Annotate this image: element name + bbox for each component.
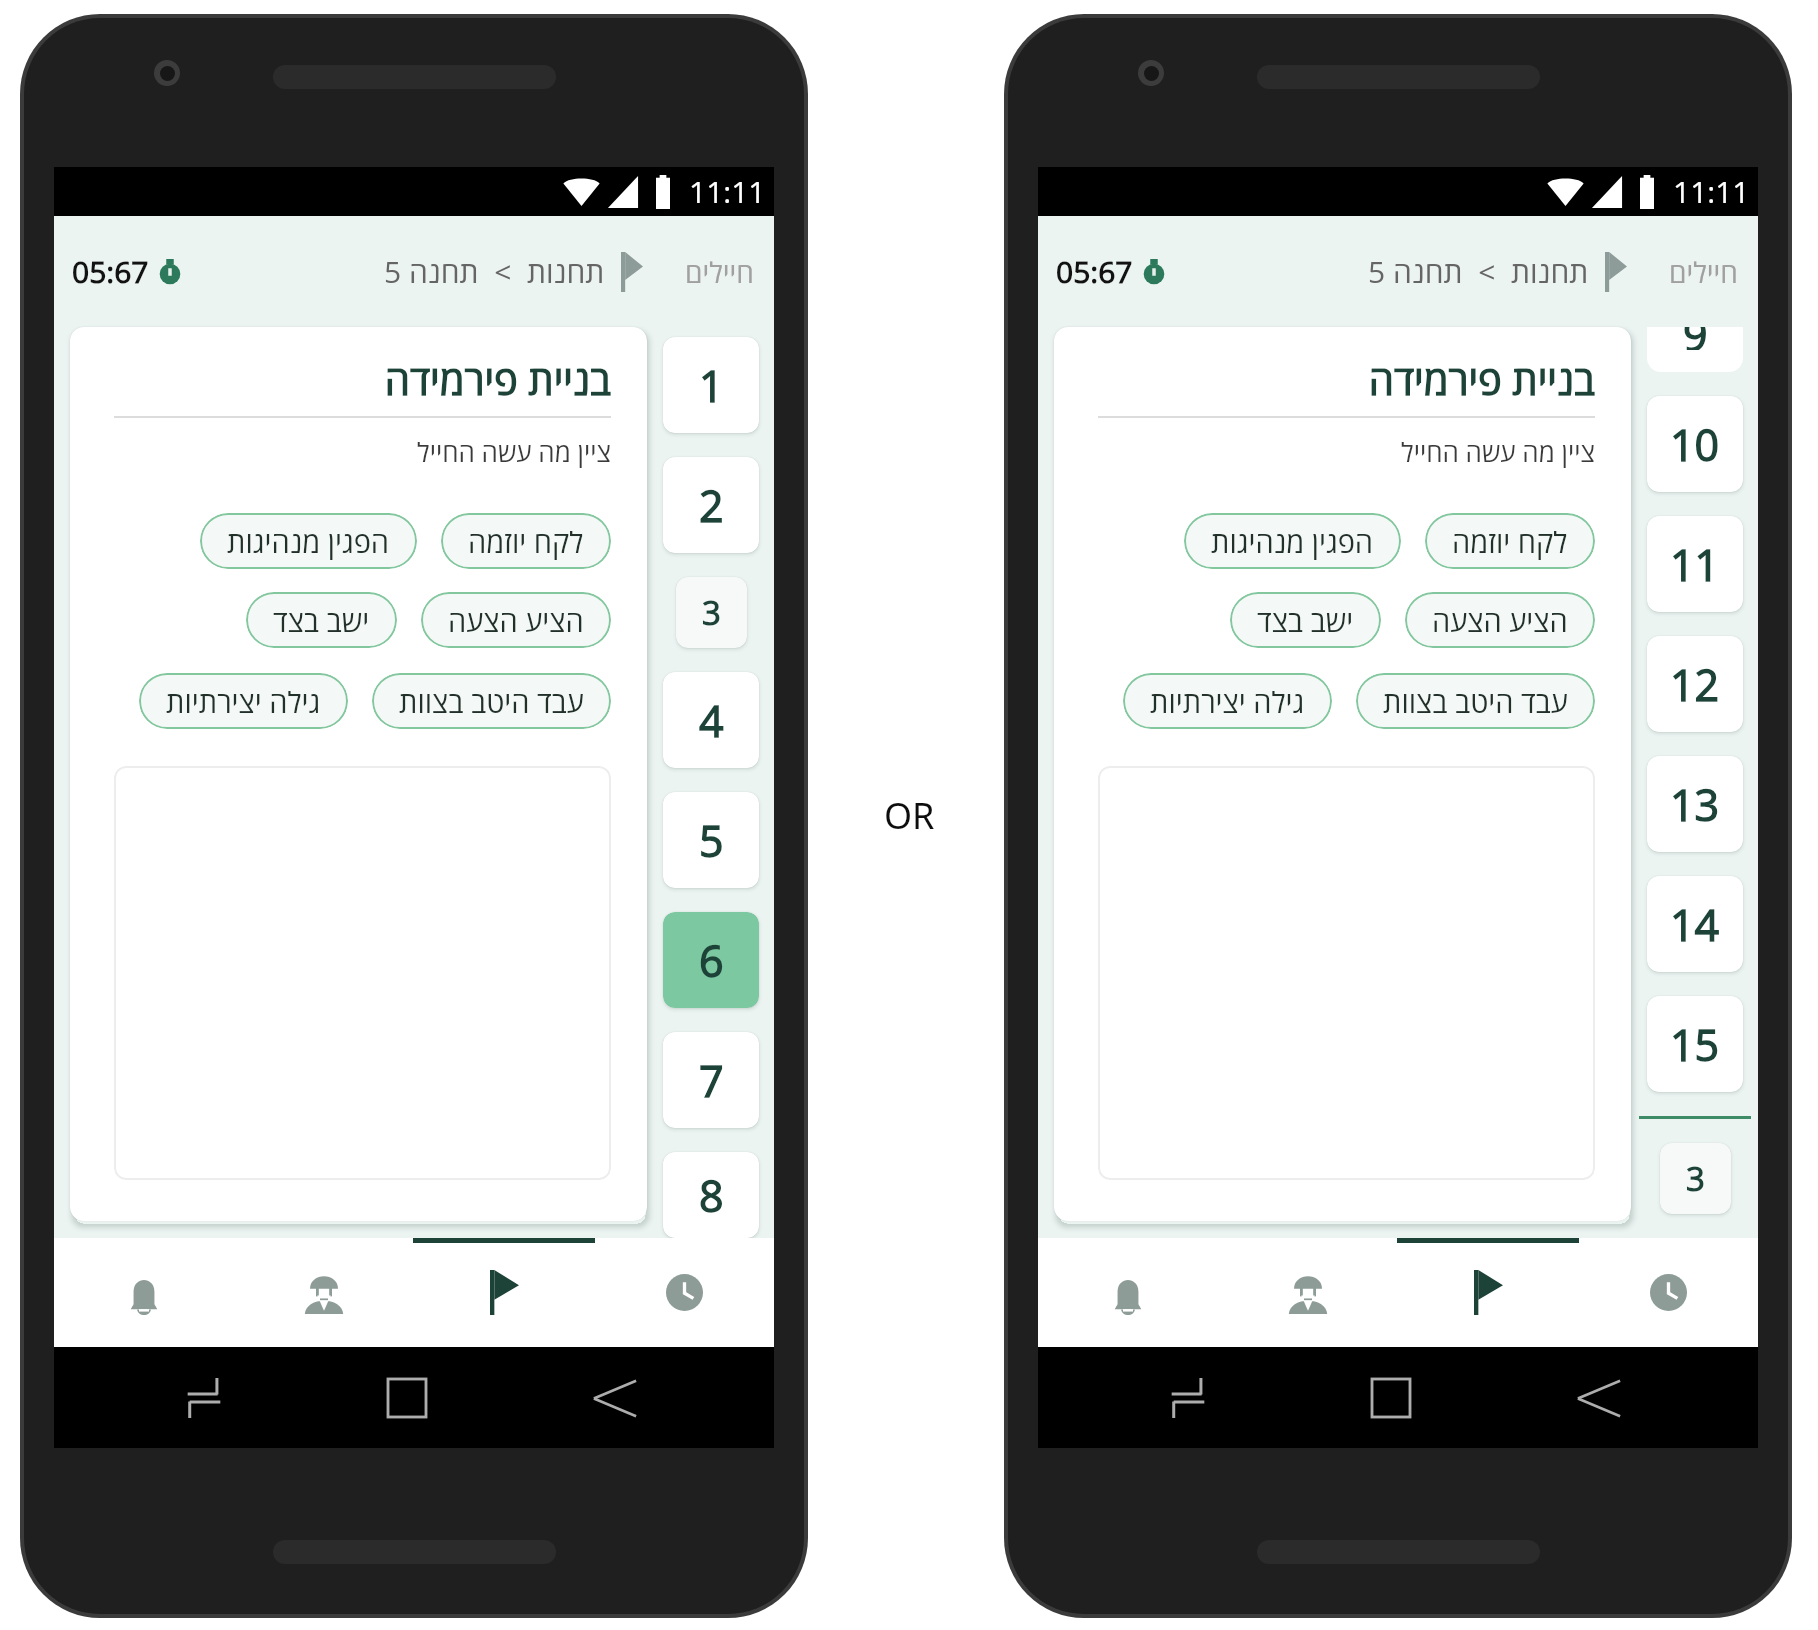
staticText: הציע הצעה bbox=[448, 601, 584, 640]
staticText: 8 bbox=[699, 1166, 724, 1225]
button[interactable]: 13 bbox=[1647, 756, 1743, 852]
staticText: בניית פירמידה bbox=[1098, 352, 1595, 406]
other: Station flag bbox=[1605, 252, 1627, 292]
staticText: הציע הצעה bbox=[1432, 601, 1568, 640]
button[interactable]: הפגין מנהיגות bbox=[1184, 513, 1401, 569]
staticText: 05:67 bbox=[72, 251, 149, 292]
other: Station flag bbox=[621, 252, 643, 292]
staticText: 2 bbox=[699, 476, 724, 535]
button[interactable]: Home bbox=[1361, 1373, 1421, 1423]
button[interactable]: Alerts bbox=[54, 1238, 234, 1347]
staticText: גילה יצירתיות bbox=[166, 682, 321, 721]
button[interactable]: 8 bbox=[663, 1152, 759, 1238]
staticText: ציין מה עשה החייל bbox=[114, 434, 611, 469]
button[interactable]: 3 bbox=[1660, 1143, 1731, 1214]
button[interactable]: Home bbox=[377, 1373, 437, 1423]
button[interactable]: ישב בצד bbox=[1230, 592, 1381, 648]
button[interactable]: History bbox=[594, 1238, 774, 1347]
button[interactable]: Soldiers bbox=[234, 1238, 414, 1347]
button[interactable]: 5 bbox=[663, 792, 759, 888]
staticText: בניית פירמידה bbox=[114, 352, 611, 406]
staticText: 7 bbox=[699, 1051, 724, 1110]
staticText: ישב בצד bbox=[1257, 601, 1354, 640]
staticText: 3 bbox=[1686, 1156, 1705, 1201]
staticText: לקח יוזמה bbox=[1452, 522, 1568, 561]
staticText: 9 bbox=[1683, 327, 1708, 350]
button[interactable]: הציע הצעה bbox=[1405, 592, 1595, 648]
button[interactable]: הפגין מנהיגות bbox=[200, 513, 417, 569]
staticText: עבד היטב בצוות bbox=[1383, 682, 1568, 721]
button[interactable]: ישב בצד bbox=[246, 592, 397, 648]
staticText: 11:11 bbox=[1673, 171, 1750, 212]
staticText: חיילים bbox=[1669, 253, 1738, 291]
staticText: 3 bbox=[702, 590, 721, 635]
button[interactable]: 6 bbox=[663, 912, 759, 1008]
staticText: 12 bbox=[1670, 655, 1720, 714]
button[interactable]: 4 bbox=[663, 672, 759, 768]
staticText: 13 bbox=[1670, 775, 1720, 834]
staticText: 4 bbox=[699, 691, 724, 750]
button[interactable]: Back bbox=[565, 1373, 665, 1423]
staticText: 11 bbox=[1670, 535, 1720, 594]
staticText: גילה יצירתיות bbox=[1150, 682, 1305, 721]
staticText: הפגין מנהיגות bbox=[1211, 522, 1374, 561]
button[interactable]: לקח יוזמה bbox=[1425, 513, 1595, 569]
button[interactable]: 10 bbox=[1647, 396, 1743, 492]
button[interactable]: Stations bbox=[1398, 1238, 1578, 1347]
button[interactable]: 2 bbox=[663, 457, 759, 553]
staticText: ציין מה עשה החייל bbox=[1098, 434, 1595, 469]
staticText: 11:11 bbox=[689, 171, 766, 212]
staticText: ישב בצד bbox=[273, 601, 370, 640]
staticText: 1 bbox=[699, 356, 724, 415]
button[interactable]: 11 bbox=[1647, 516, 1743, 612]
staticText: תחנות > תחנה 5 bbox=[1368, 251, 1589, 292]
staticText: OR bbox=[884, 791, 935, 840]
button[interactable]: 3 bbox=[676, 577, 747, 648]
button[interactable]: Back bbox=[1549, 1373, 1649, 1423]
button[interactable]: גילה יצירתיות bbox=[1123, 673, 1332, 729]
button[interactable]: Soldiers bbox=[1218, 1238, 1398, 1347]
staticText: 05:67 bbox=[1056, 251, 1133, 292]
button[interactable]: 12 bbox=[1647, 636, 1743, 732]
staticText: עבד היטב בצוות bbox=[399, 682, 584, 721]
button[interactable]: History bbox=[1578, 1238, 1758, 1347]
button[interactable]: גילה יצירתיות bbox=[139, 673, 348, 729]
staticText: תחנות > תחנה 5 bbox=[384, 251, 605, 292]
button[interactable]: Alerts bbox=[1038, 1238, 1218, 1347]
button[interactable]: עבד היטב בצוות bbox=[372, 673, 611, 729]
staticText: לקח יוזמה bbox=[468, 522, 584, 561]
button[interactable]: לקח יוזמה bbox=[441, 513, 611, 569]
button[interactable]: 1 bbox=[663, 337, 759, 433]
staticText: חיילים bbox=[685, 253, 754, 291]
button[interactable]: Recent apps bbox=[1158, 1373, 1218, 1423]
button[interactable]: 14 bbox=[1647, 876, 1743, 972]
button[interactable]: 15 bbox=[1647, 996, 1743, 1092]
staticText: 10 bbox=[1670, 415, 1720, 474]
button[interactable]: הציע הצעה bbox=[421, 592, 611, 648]
button[interactable]: Recent apps bbox=[174, 1373, 234, 1423]
staticText: 5 bbox=[699, 811, 724, 870]
staticText: 6 bbox=[699, 931, 724, 990]
button[interactable]: עבד היטב בצוות bbox=[1356, 673, 1595, 729]
button[interactable]: 9 bbox=[1647, 327, 1743, 372]
staticText: 14 bbox=[1670, 895, 1720, 954]
staticText: הפגין מנהיגות bbox=[227, 522, 390, 561]
button[interactable]: 7 bbox=[663, 1032, 759, 1128]
staticText: 15 bbox=[1670, 1015, 1720, 1074]
button[interactable]: Stations bbox=[414, 1238, 594, 1347]
